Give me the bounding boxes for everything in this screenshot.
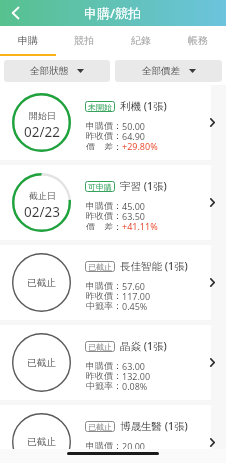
staticText: 昨收價：	[86, 130, 122, 140]
staticText: 已截止	[88, 422, 112, 432]
staticText: 申購價：	[86, 120, 122, 130]
button[interactable]: 已截止	[0, 245, 211, 320]
button[interactable]: 全部狀態	[4, 60, 110, 82]
button[interactable]: 申購	[0, 26, 56, 56]
staticText: 價 差：	[86, 220, 122, 230]
staticText: 全部狀態	[30, 65, 68, 77]
staticText: 長佳智能 (1張)	[120, 259, 188, 273]
button[interactable]: 已截止	[0, 325, 211, 400]
button[interactable]: 已截止	[0, 405, 211, 463]
staticText: 昨收價：	[86, 450, 122, 460]
button[interactable]: 全部價差	[115, 60, 222, 82]
staticText: 50.00	[122, 120, 146, 130]
staticText: 02/23	[24, 203, 60, 221]
button[interactable]: 競拍	[56, 26, 112, 56]
staticText: +29.80%	[122, 140, 158, 150]
staticText: 紀錄	[131, 34, 151, 47]
staticText: 昨收價：	[86, 290, 122, 300]
staticText: 昨收價：	[86, 370, 122, 380]
staticText: 開始日	[29, 110, 56, 121]
staticText: 132.00	[122, 370, 151, 380]
staticText: 競拍	[74, 34, 94, 47]
staticText: 02/22	[24, 123, 60, 141]
button[interactable]: Details	[203, 245, 223, 320]
staticText: 117.00	[122, 290, 151, 300]
staticText: 申購	[18, 34, 38, 47]
staticText: 64.90	[122, 130, 146, 140]
staticText: 截止日	[29, 190, 56, 201]
staticText: 全部價差	[142, 65, 180, 77]
staticText: 申購價：	[86, 360, 122, 370]
staticText: 昨收價：	[86, 210, 122, 220]
staticText: 申購價：	[86, 280, 122, 290]
button[interactable]: Details	[203, 405, 223, 463]
staticText: 63.00	[122, 360, 146, 370]
staticText: 利機 (1張)	[120, 99, 167, 113]
staticText: 20.00	[122, 440, 146, 450]
staticText: 已截止	[88, 262, 112, 272]
button[interactable]: Details	[203, 85, 223, 160]
staticText: 未開始	[88, 102, 112, 112]
staticText: 可申購	[88, 182, 112, 192]
staticText: 35.00	[122, 450, 146, 460]
button[interactable]: Details	[203, 165, 223, 240]
button[interactable]: 開始日	[0, 85, 211, 160]
staticText: 0.45%	[122, 300, 148, 310]
staticText: 63.50	[122, 210, 146, 220]
staticText: +41.11%	[122, 220, 158, 230]
staticText: 0.08%	[122, 380, 148, 390]
staticText: 帳務	[188, 34, 208, 47]
staticText: 57.60	[122, 280, 146, 290]
staticText: 45.00	[122, 200, 146, 210]
staticText: 宇習 (1張)	[120, 179, 167, 193]
button[interactable]: 截止日	[0, 165, 211, 240]
staticText: 申購價：	[86, 440, 122, 450]
button[interactable]: Details	[203, 325, 223, 400]
staticText: 博晟生醫 (1張)	[120, 419, 188, 433]
staticText: 價 差：	[86, 140, 122, 150]
staticText: 已截止	[88, 342, 112, 352]
staticText: 已截止	[27, 277, 56, 289]
staticText: 申購/競拍	[84, 4, 142, 22]
button[interactable]: Back	[0, 0, 30, 26]
button[interactable]: 紀錄	[112, 26, 169, 56]
staticText: 申購價：	[86, 200, 122, 210]
staticText: 已截止	[27, 357, 56, 369]
staticText: 中籤率：	[86, 380, 122, 390]
button[interactable]: 帳務	[169, 26, 226, 56]
staticText: 中籤率：	[86, 300, 122, 310]
staticText: 晶焱 (1張)	[120, 339, 167, 353]
staticText: 已截止	[27, 436, 56, 448]
